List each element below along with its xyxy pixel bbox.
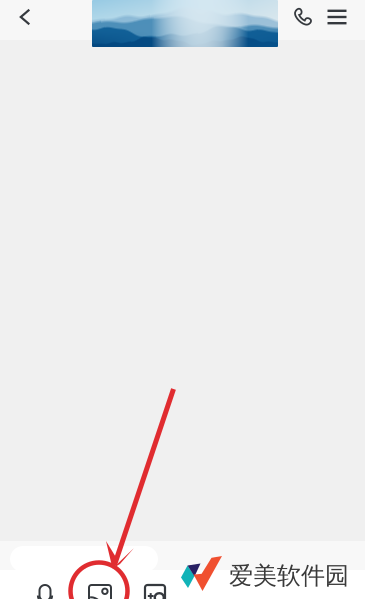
- button[interactable]: Back: [0, 0, 50, 34]
- staticText: 爱美软件园: [229, 561, 349, 590]
- button[interactable]: Voice message: [37, 585, 89, 599]
- button[interactable]: Photos: [89, 585, 144, 599]
- button[interactable]: Camera: [144, 585, 199, 599]
- button[interactable]: Call: [280, 0, 318, 34]
- button[interactable]: Menu: [318, 0, 356, 34]
